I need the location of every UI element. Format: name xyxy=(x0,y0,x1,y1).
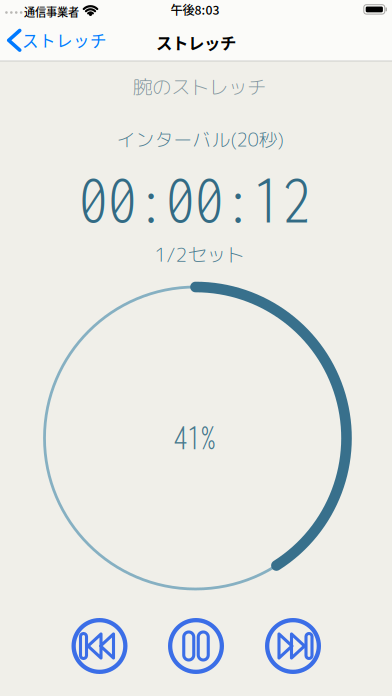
button[interactable]: 次へ xyxy=(265,618,321,674)
staticText: ストレッチ xyxy=(22,28,107,52)
staticText: 午後8:03 xyxy=(170,1,219,18)
staticText: 41% xyxy=(173,419,215,456)
staticText: 1/2セット xyxy=(154,241,244,268)
button[interactable]: 一時停止 xyxy=(168,618,224,674)
button[interactable]: 前へ xyxy=(71,618,127,674)
button[interactable]: 戻る xyxy=(0,20,108,62)
staticText: ストレッチ xyxy=(156,30,236,54)
staticText: 00:00:12 xyxy=(79,161,311,236)
staticText: インターバル(20秒) xyxy=(116,127,283,152)
staticText: 通信事業者 xyxy=(24,3,79,20)
staticText: 腕のストレッチ xyxy=(133,73,266,100)
